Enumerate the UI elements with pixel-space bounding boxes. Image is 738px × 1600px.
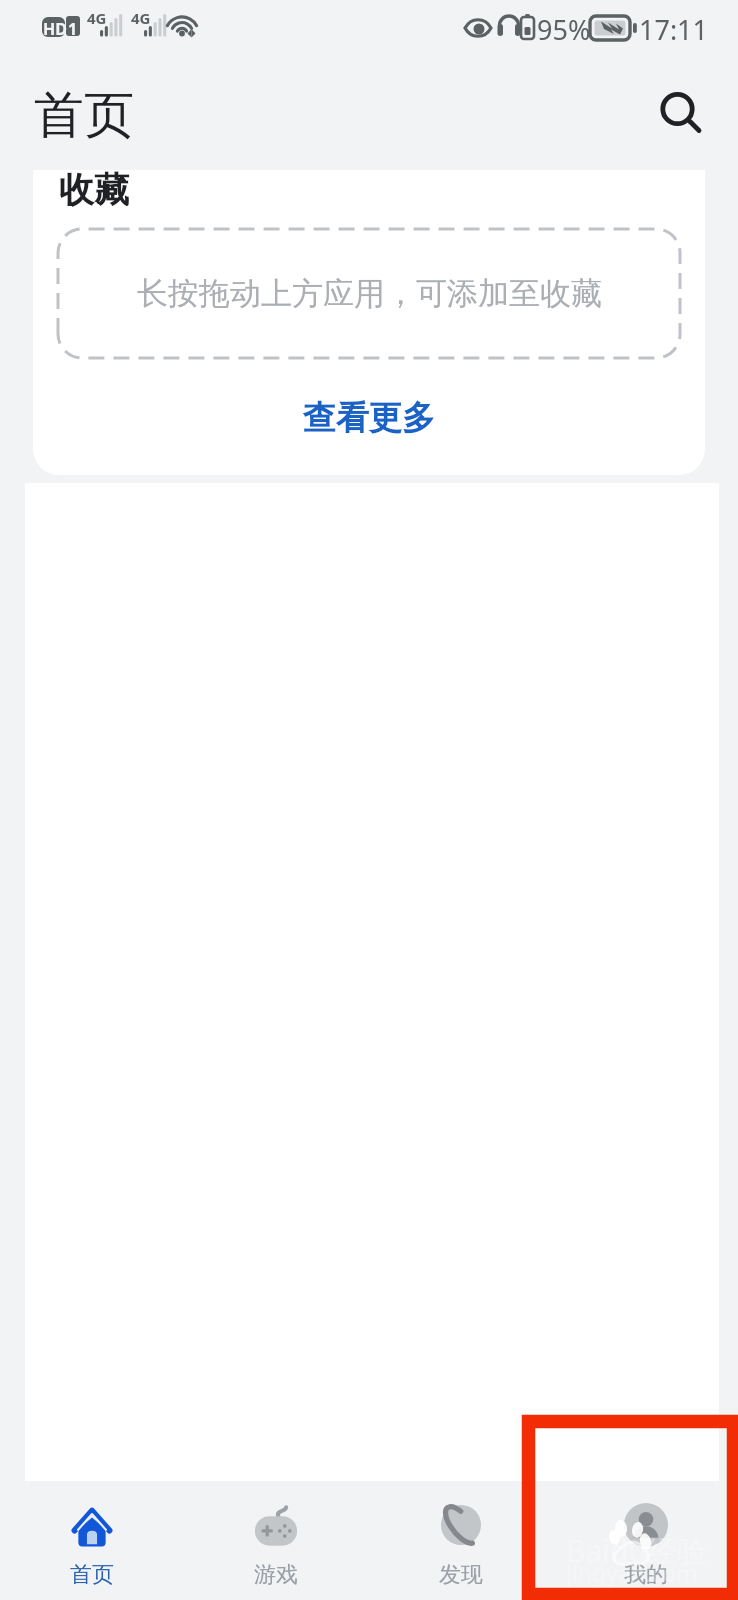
staticText: 17:11: [639, 11, 709, 48]
button[interactable]: 我的: [553, 1481, 738, 1600]
button[interactable]: 游戏: [184, 1481, 368, 1600]
staticText: Baidu经验: [566, 1530, 708, 1571]
staticText: 游戏: [254, 1561, 298, 1589]
button[interactable]: 首页: [0, 1481, 184, 1600]
staticText: 我的: [624, 1561, 668, 1589]
staticText: 发现: [439, 1561, 483, 1589]
staticText: 4G: [131, 8, 151, 28]
staticText: 首页: [34, 84, 134, 147]
staticText: 首页: [70, 1561, 114, 1589]
staticText: 收藏: [59, 170, 129, 212]
staticText: jingyan.com: [566, 1557, 698, 1588]
staticText: HD: [43, 18, 67, 40]
button[interactable]: Search: [643, 82, 707, 146]
staticText: 4G: [87, 8, 107, 28]
button[interactable]: 查看更多: [303, 397, 435, 439]
staticText: 长按拖动上方应用，可添加至收藏: [137, 274, 602, 313]
button[interactable]: 长按拖动上方应用，可添加至收藏: [58, 229, 680, 358]
staticText: 95%: [537, 11, 591, 48]
button[interactable]: 发现: [368, 1481, 553, 1600]
staticText: 1: [68, 18, 78, 40]
